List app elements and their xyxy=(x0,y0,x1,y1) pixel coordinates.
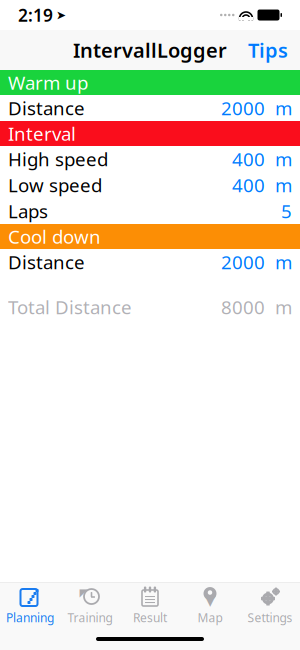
staticText: ➤ xyxy=(56,8,66,22)
staticText: Laps xyxy=(8,199,48,223)
staticText: Warm up xyxy=(8,70,88,95)
button[interactable]: Tips xyxy=(236,29,300,71)
button[interactable]: Planning xyxy=(0,583,60,628)
staticText: ◤ xyxy=(79,586,87,599)
staticText: ▼ xyxy=(204,592,215,608)
staticText: Distance xyxy=(8,96,85,120)
staticText: Tips xyxy=(248,37,288,63)
staticText: Planning xyxy=(6,609,54,625)
staticText: 5 xyxy=(281,199,292,223)
button[interactable]: Distance xyxy=(0,95,300,121)
button[interactable]: Laps xyxy=(0,198,300,224)
staticText: IntervallLogger xyxy=(73,37,227,63)
staticText: Training xyxy=(67,609,112,625)
staticText: 2:19 xyxy=(18,3,53,26)
staticText: Interval xyxy=(8,121,76,146)
staticText: Map xyxy=(197,609,222,625)
staticText: Settings xyxy=(247,609,292,625)
button[interactable]: ▼ xyxy=(180,583,240,628)
staticText: 400 m xyxy=(232,173,292,197)
staticText: Low speed xyxy=(8,173,102,197)
button[interactable]: Settings xyxy=(240,583,300,628)
staticText: 2000 m xyxy=(221,250,292,274)
staticText: Cool down xyxy=(8,224,101,249)
staticText: Total Distance xyxy=(8,295,132,319)
button[interactable]: ◤ xyxy=(60,583,120,628)
staticText: Result xyxy=(133,609,167,625)
button[interactable]: Low speed xyxy=(0,172,300,198)
staticText: Distance xyxy=(8,250,85,274)
staticText: 2000 m xyxy=(221,96,292,120)
staticText: 8000 m xyxy=(221,295,292,319)
button[interactable]: High speed xyxy=(0,146,300,172)
staticText: High speed xyxy=(8,147,108,171)
button[interactable]: Result xyxy=(120,583,180,628)
button[interactable]: Distance xyxy=(0,249,300,275)
staticText: 400 m xyxy=(232,147,292,171)
